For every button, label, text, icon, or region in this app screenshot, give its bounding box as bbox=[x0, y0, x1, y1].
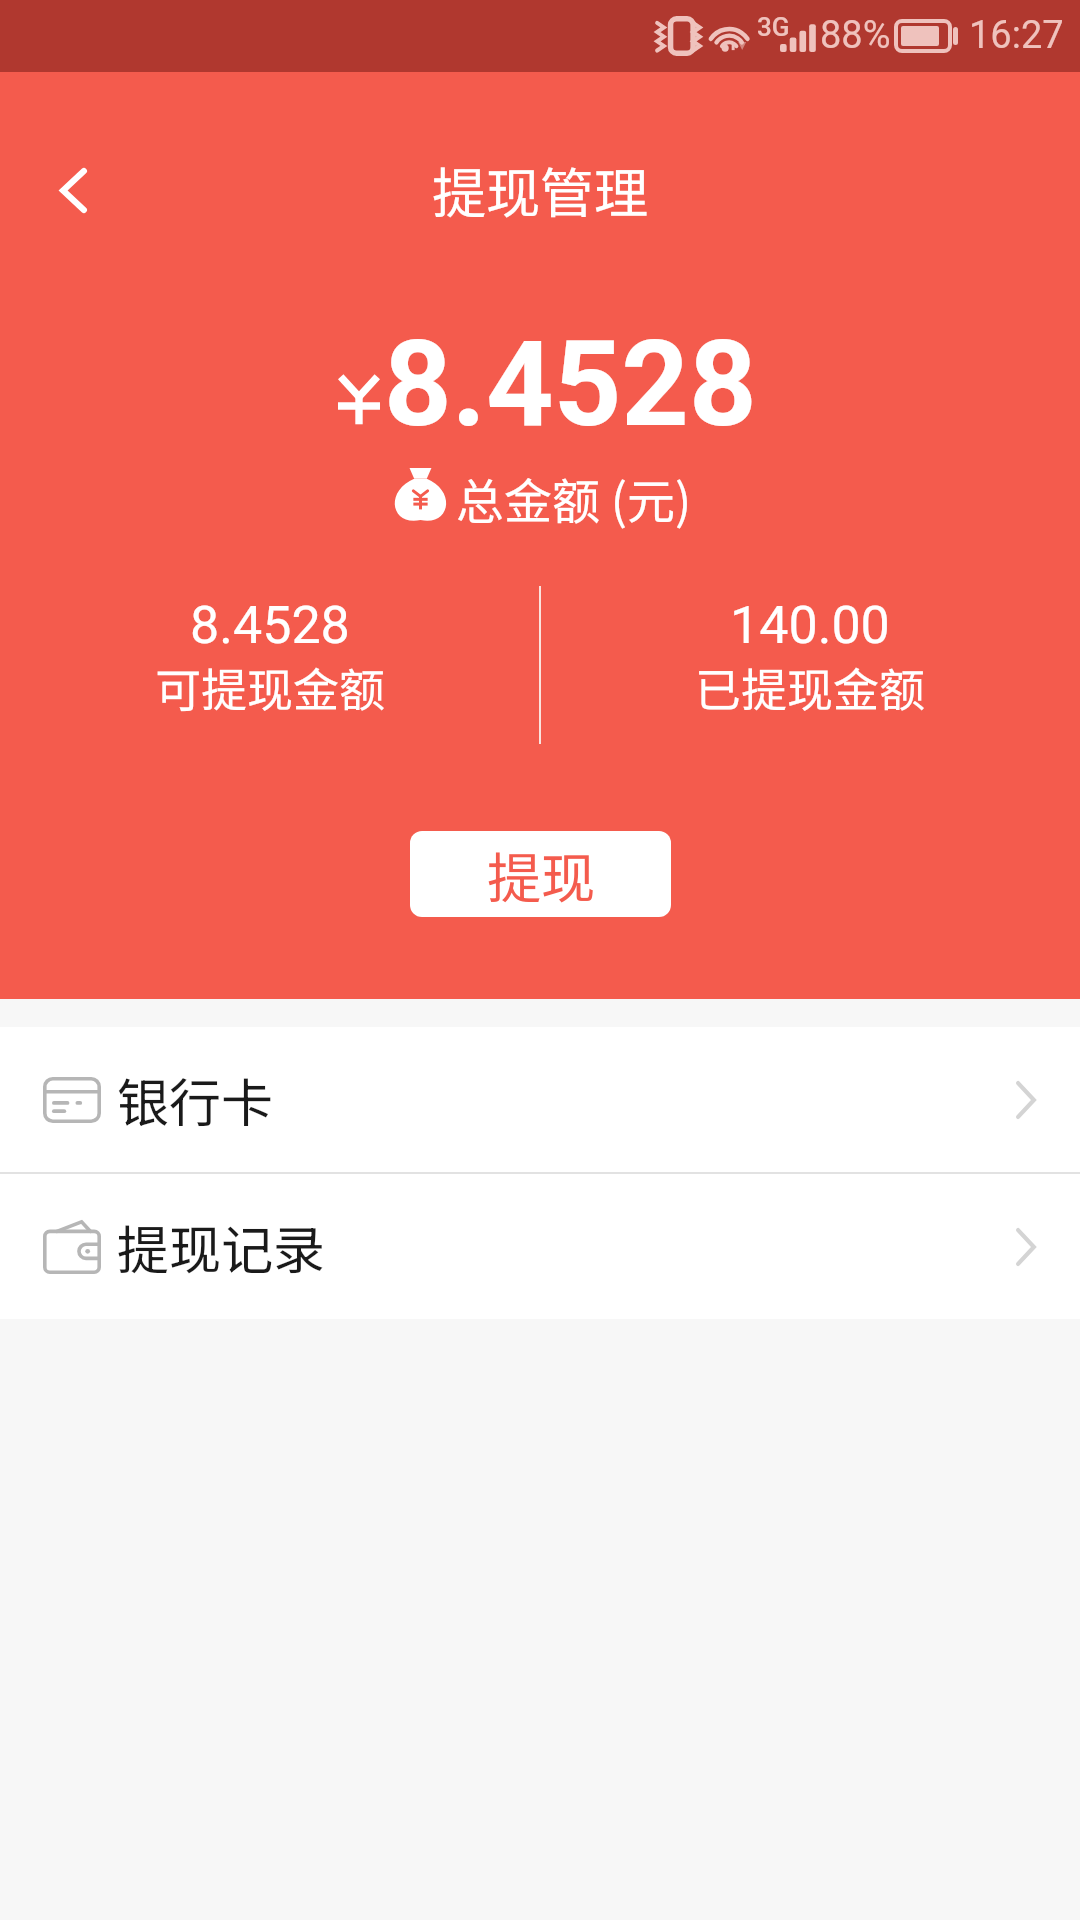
staticText: 可提现金额 bbox=[155, 654, 385, 721]
staticText: 总金额 (元) bbox=[456, 463, 692, 533]
staticText: 提现 bbox=[487, 835, 595, 913]
staticText: 银行卡 bbox=[117, 1062, 274, 1137]
button[interactable]: 银行卡 bbox=[0, 1027, 1080, 1172]
staticText: 提现记录 bbox=[117, 1209, 326, 1284]
staticText: 提现管理 bbox=[0, 150, 1080, 228]
staticText: 已提现金额 bbox=[695, 654, 925, 721]
staticText: 16:27 bbox=[969, 13, 1064, 58]
staticText: 3G bbox=[757, 12, 790, 42]
staticText: 8.4528 bbox=[190, 595, 350, 656]
button[interactable]: 提现 bbox=[410, 831, 671, 917]
staticText: 8.4528 bbox=[384, 316, 757, 454]
staticText: 140.00 bbox=[730, 595, 890, 656]
button[interactable]: 提现记录 bbox=[0, 1174, 1080, 1319]
button[interactable]: Back bbox=[29, 146, 117, 234]
staticText: 88% bbox=[820, 13, 891, 58]
